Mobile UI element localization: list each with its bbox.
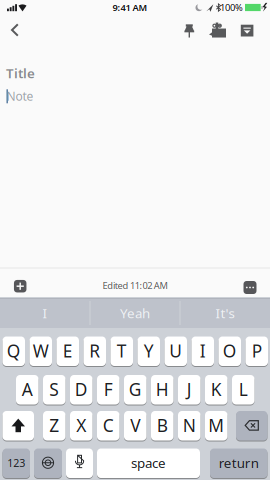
- button[interactable]: [2, 410, 34, 441]
- staticText: S: [49, 378, 59, 401]
- staticText: A: [22, 378, 33, 401]
- staticText: F: [104, 378, 113, 401]
- button[interactable]: H: [151, 374, 173, 405]
- button[interactable]: [240, 277, 260, 297]
- button[interactable]: N: [178, 410, 200, 441]
- button[interactable]: Y: [137, 336, 160, 366]
- button[interactable]: M: [205, 410, 227, 441]
- button[interactable]: [66, 448, 93, 478]
- staticText: Note: [6, 88, 33, 104]
- staticText: M: [208, 414, 224, 437]
- button[interactable]: L: [232, 374, 254, 405]
- button[interactable]: [34, 448, 62, 478]
- button[interactable]: C: [97, 410, 119, 441]
- staticText: N: [183, 414, 196, 437]
- button[interactable]: return: [210, 448, 267, 478]
- staticText: U: [169, 339, 182, 362]
- staticText: Yeah: [120, 304, 150, 322]
- button[interactable]: space: [97, 448, 200, 478]
- staticText: Q: [7, 339, 21, 362]
- button[interactable]: G: [124, 374, 146, 405]
- staticText: O: [223, 339, 237, 362]
- staticText: It's: [215, 304, 234, 322]
- staticText: Edited 11:02 AM: [102, 279, 168, 292]
- button[interactable]: R: [83, 336, 106, 366]
- staticText: R: [89, 339, 100, 362]
- staticText: 123: [7, 456, 25, 470]
- button[interactable]: X: [70, 410, 92, 441]
- button[interactable]: Yeah: [91, 298, 179, 327]
- staticText: G: [129, 378, 142, 401]
- staticText: space: [131, 454, 166, 472]
- staticText: T: [117, 339, 127, 362]
- staticText: Title: [6, 64, 35, 82]
- button[interactable]: I: [1, 298, 89, 327]
- button[interactable]: A: [16, 374, 38, 405]
- button[interactable]: [1, 16, 29, 44]
- staticText: C: [103, 414, 114, 437]
- staticText: 9:41 AM: [112, 1, 147, 14]
- button[interactable]: D: [70, 374, 92, 405]
- button[interactable]: [10, 276, 30, 296]
- staticText: V: [130, 414, 140, 437]
- button[interactable]: [236, 410, 267, 441]
- button[interactable]: 123: [2, 448, 30, 478]
- staticText: X: [76, 414, 86, 437]
- button[interactable]: F: [97, 374, 119, 405]
- staticText: 100%: [220, 1, 243, 14]
- button[interactable]: Z: [43, 410, 65, 441]
- staticText: L: [239, 378, 248, 401]
- staticText: E: [63, 339, 73, 362]
- button[interactable]: It's: [181, 298, 269, 327]
- staticText: P: [252, 339, 262, 362]
- staticText: H: [156, 378, 169, 401]
- staticText: return: [219, 454, 259, 472]
- staticText: D: [75, 378, 88, 401]
- button[interactable]: T: [110, 336, 133, 366]
- button[interactable]: [204, 17, 230, 43]
- button[interactable]: S: [43, 374, 65, 405]
- staticText: K: [211, 378, 222, 401]
- button[interactable]: O: [218, 336, 241, 366]
- staticText: W: [33, 339, 49, 362]
- button[interactable]: W: [29, 336, 52, 366]
- button[interactable]: I: [191, 336, 214, 366]
- button[interactable]: K: [205, 374, 227, 405]
- button[interactable]: J: [178, 374, 200, 405]
- staticText: B: [157, 414, 168, 437]
- button[interactable]: E: [56, 336, 79, 366]
- button[interactable]: V: [124, 410, 146, 441]
- button[interactable]: P: [245, 336, 268, 366]
- staticText: Y: [144, 339, 154, 362]
- staticText: I: [42, 304, 47, 322]
- button[interactable]: Q: [2, 336, 25, 366]
- button[interactable]: U: [164, 336, 187, 366]
- staticText: Z: [49, 414, 59, 437]
- staticText: I: [200, 339, 206, 362]
- button[interactable]: [176, 17, 202, 43]
- staticText: J: [187, 378, 192, 401]
- button[interactable]: B: [151, 410, 173, 441]
- button[interactable]: [234, 17, 260, 43]
